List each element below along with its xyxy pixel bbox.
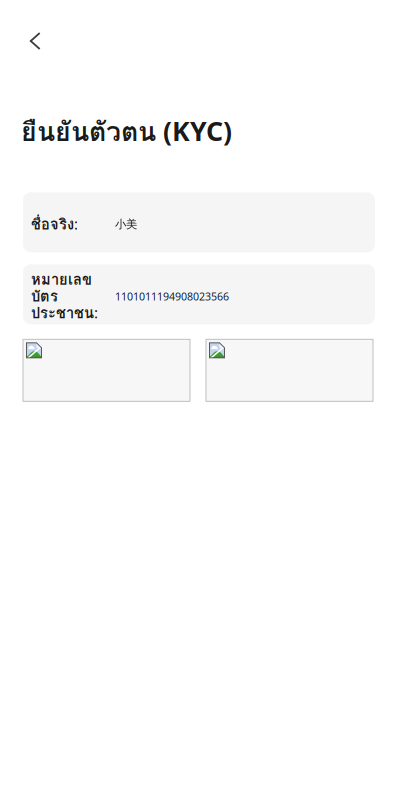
staticText: 1101011194908023566: [115, 289, 229, 303]
staticText: หมายเลข บัตร ประชาชน:: [31, 271, 98, 321]
button[interactable]: Back: [17, 23, 53, 59]
staticText: ยืนยันตัวตน (KYC): [21, 111, 232, 152]
button[interactable]: ID card photo: [23, 339, 190, 401]
button[interactable]: ID card photo: [206, 339, 373, 401]
staticText: ชื่อจริง:: [31, 216, 78, 233]
staticText: 小美: [115, 217, 137, 231]
